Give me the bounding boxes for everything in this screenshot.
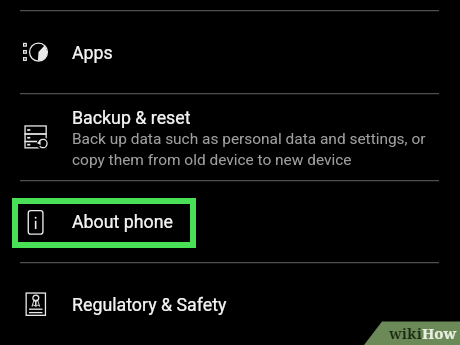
- staticText: wiki: [389, 323, 422, 343]
- button[interactable]: Apps: [0, 11, 460, 93]
- button[interactable]: Backup & reset: [0, 94, 460, 180]
- staticText: Backup & reset: [72, 107, 191, 128]
- button[interactable]: About phone: [0, 181, 460, 262]
- staticText: Back up data such as personal data and s…: [72, 130, 436, 169]
- staticText: Apps: [72, 42, 113, 63]
- staticText: About phone: [72, 211, 174, 232]
- staticText: How: [422, 323, 457, 343]
- button[interactable]: Regulatory & Safety: [0, 263, 460, 345]
- staticText: Regulatory & Safety: [72, 294, 227, 315]
